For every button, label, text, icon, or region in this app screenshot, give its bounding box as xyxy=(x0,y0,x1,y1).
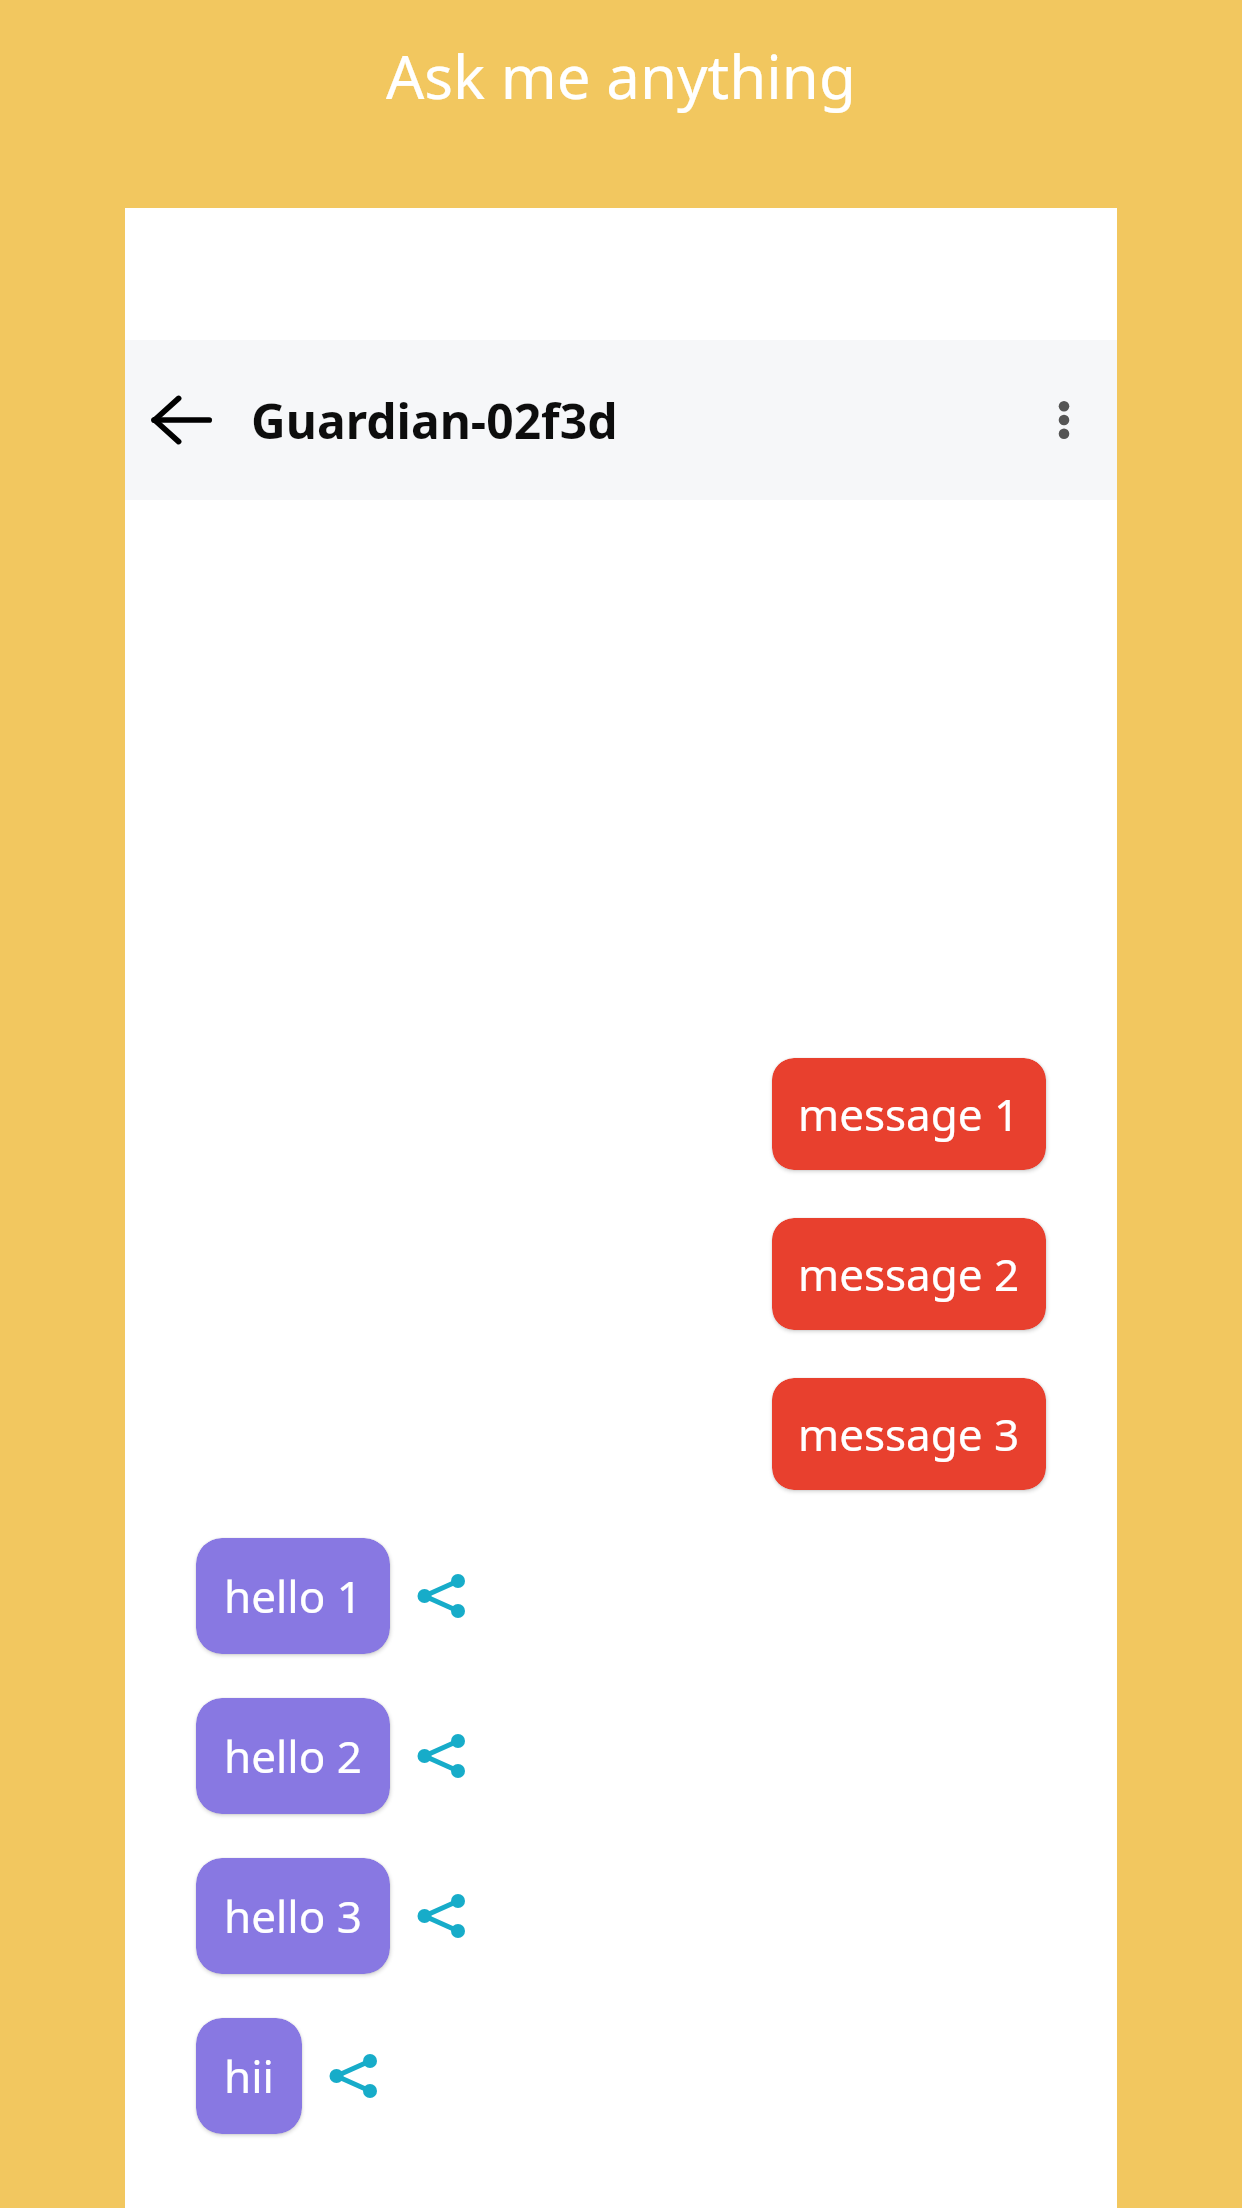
staticText: hello 1 xyxy=(224,1566,362,1626)
staticText: Ask me anything xyxy=(386,35,856,117)
staticText: hii xyxy=(224,2046,274,2106)
button[interactable]: hello 1 xyxy=(196,1538,390,1654)
staticText: message 1 xyxy=(798,1084,1020,1144)
staticText: hello 2 xyxy=(224,1726,362,1786)
button[interactable]: Share xyxy=(410,1565,472,1627)
button[interactable]: hello 3 xyxy=(196,1858,390,1974)
button[interactable]: hello 2 xyxy=(196,1698,390,1814)
button[interactable]: message 1 xyxy=(772,1058,1046,1170)
staticText: hello 3 xyxy=(224,1886,362,1946)
button[interactable]: message 2 xyxy=(772,1218,1046,1330)
button[interactable]: Back xyxy=(133,372,229,468)
button[interactable]: Share xyxy=(322,2045,384,2107)
button[interactable]: Share xyxy=(410,1885,472,1947)
button[interactable]: Share xyxy=(410,1725,472,1787)
button[interactable]: More options xyxy=(1019,375,1109,465)
button[interactable]: message 3 xyxy=(772,1378,1046,1490)
button[interactable]: hii xyxy=(196,2018,302,2134)
staticText: Guardian-02f3d xyxy=(251,388,618,453)
staticText: message 3 xyxy=(798,1404,1020,1464)
staticText: message 2 xyxy=(798,1244,1020,1304)
